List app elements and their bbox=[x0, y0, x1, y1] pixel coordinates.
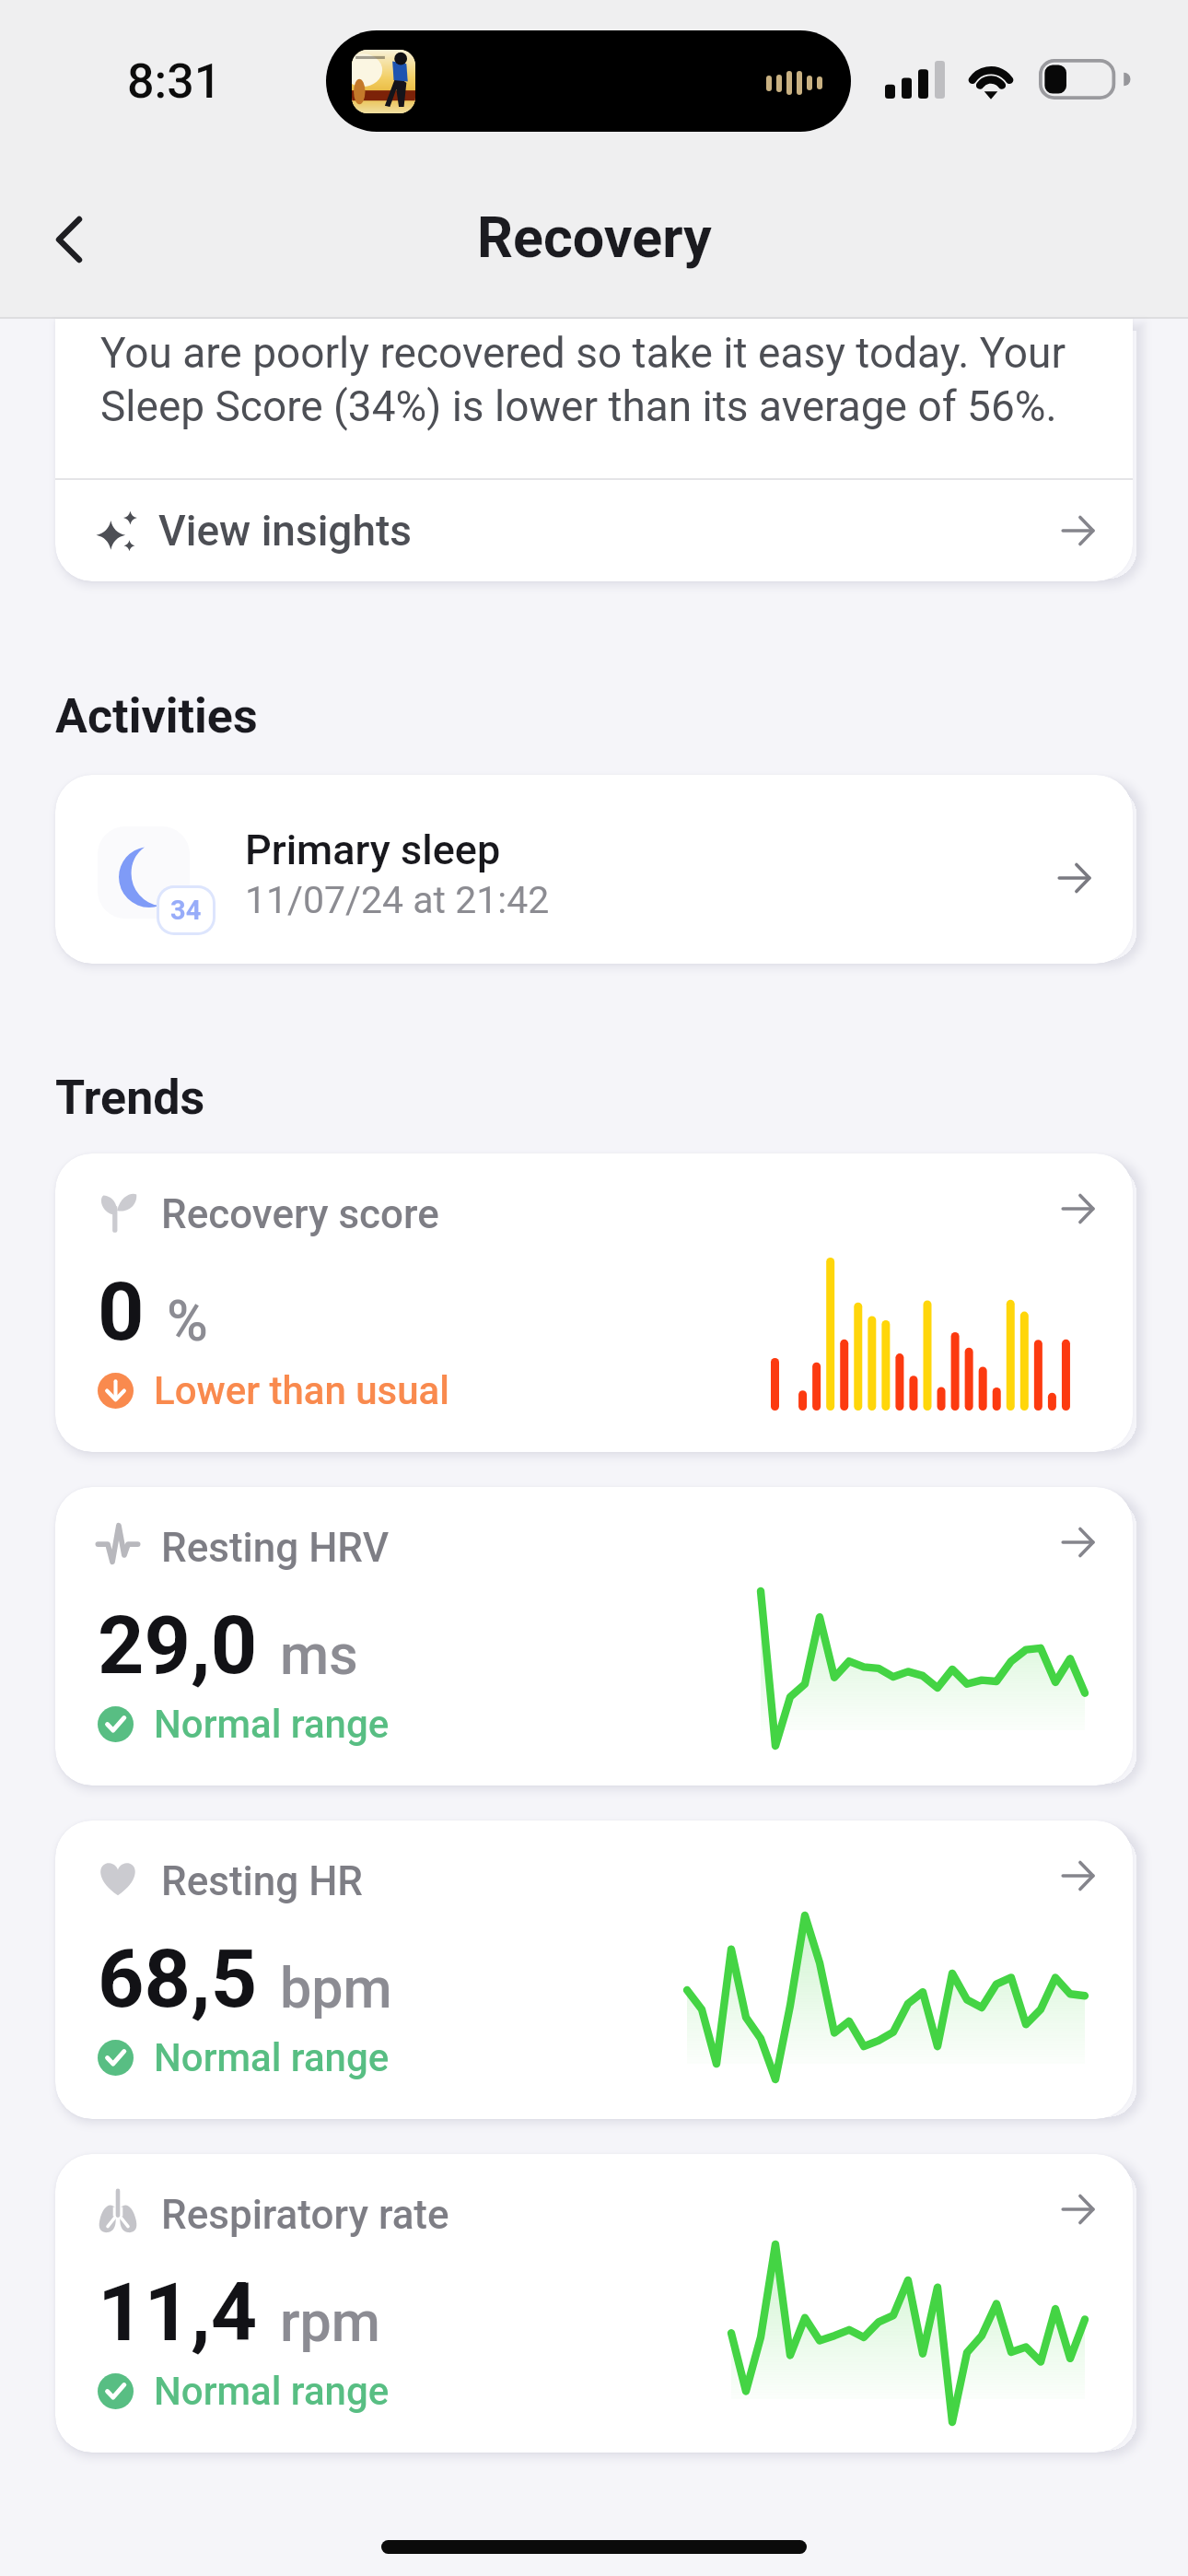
staticText: rpm bbox=[280, 2289, 380, 2354]
staticText: Normal range bbox=[154, 1702, 390, 1747]
other: Open primary sleep bbox=[1055, 859, 1094, 897]
staticText: 68,5 bbox=[98, 1931, 258, 2026]
button[interactable]: 34 bbox=[55, 775, 1133, 964]
staticText: Activities bbox=[55, 688, 258, 744]
staticText: Normal range bbox=[154, 2035, 390, 2080]
staticText: Trends bbox=[55, 1070, 205, 1126]
button[interactable]: Recovery score bbox=[55, 1153, 1133, 1452]
staticText: You are poorly recovered so take it easy… bbox=[100, 328, 1107, 431]
staticText: Primary sleep bbox=[245, 825, 501, 874]
staticText: % bbox=[167, 1288, 208, 1353]
other: Open insights bbox=[1059, 511, 1098, 550]
button[interactable]: Respiratory rate bbox=[55, 2154, 1133, 2453]
staticText: ms bbox=[280, 1622, 358, 1687]
button[interactable]: View insights bbox=[55, 480, 1133, 581]
staticText: bpm bbox=[280, 1955, 392, 2020]
staticText: 0 bbox=[98, 1264, 145, 1359]
staticText: Resting HRV bbox=[161, 1524, 390, 1572]
staticText: Resting HR bbox=[161, 1857, 364, 1905]
staticText: Respiratory rate bbox=[161, 2191, 449, 2239]
staticText: 11,4 bbox=[98, 2265, 258, 2359]
staticText: Recovery score bbox=[161, 1190, 439, 1238]
button[interactable]: Back bbox=[35, 205, 103, 274]
staticText: Lower than usual bbox=[154, 1368, 449, 1413]
other: Open Recovery score bbox=[1059, 1189, 1098, 1228]
staticText: View insights bbox=[158, 506, 412, 556]
button[interactable]: Resting HR bbox=[55, 1821, 1133, 2119]
staticText: 34 bbox=[170, 895, 202, 926]
button[interactable]: Resting HRV bbox=[55, 1487, 1133, 1786]
staticText: 8:31 bbox=[127, 53, 222, 110]
staticText: 29,0 bbox=[98, 1598, 258, 1692]
other: Open Respiratory rate bbox=[1059, 2190, 1098, 2229]
staticText: Recovery bbox=[477, 205, 712, 270]
staticText: Normal range bbox=[154, 2369, 390, 2414]
other: Open Resting HRV bbox=[1059, 1523, 1098, 1562]
other: Open Resting HR bbox=[1059, 1856, 1098, 1895]
staticText: 11/07/24 at 21:42 bbox=[245, 878, 550, 922]
